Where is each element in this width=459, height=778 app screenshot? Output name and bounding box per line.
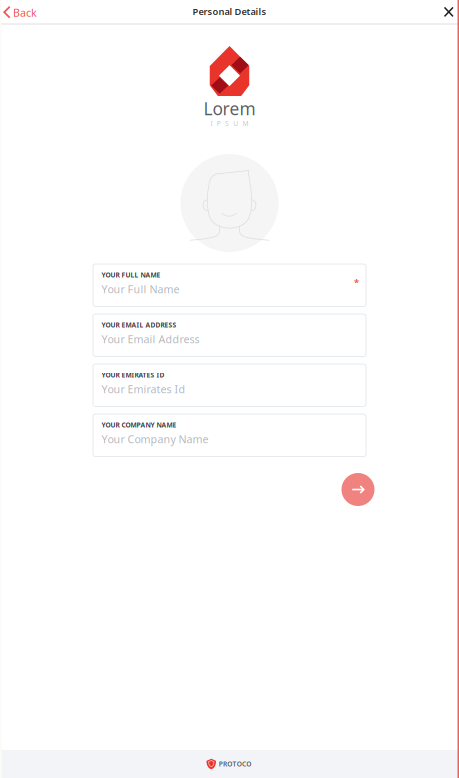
staticText: Back [13, 5, 37, 20]
button[interactable]: YOUR COMPANY NAME [93, 414, 366, 456]
staticText: Your Emirates Id [101, 382, 185, 396]
staticText: YOUR EMAIL ADDRESS [101, 321, 176, 329]
staticText: YOUR EMIRATES ID [101, 371, 164, 379]
staticText: Lorem [203, 97, 255, 120]
staticText: Your Email Address [101, 332, 199, 346]
staticText: YOUR COMPANY NAME [101, 421, 176, 429]
button[interactable]: Continue [341, 473, 374, 506]
button[interactable]: Close [434, 1, 459, 24]
staticText: PROTOCO [219, 760, 251, 768]
staticText: YOUR FULL NAME [101, 271, 160, 279]
staticText: Personal Details [192, 5, 266, 18]
button[interactable]: YOUR EMAIL ADDRESS [93, 314, 366, 356]
staticText: * [354, 276, 359, 288]
button[interactable]: Back [0, 1, 45, 24]
staticText: Your Company Name [101, 432, 208, 446]
button[interactable]: YOUR EMIRATES ID [93, 364, 366, 406]
button[interactable]: YOUR FULL NAME [93, 264, 366, 306]
staticText: Your Full Name [101, 282, 179, 296]
staticText: I P S U M [211, 119, 248, 128]
